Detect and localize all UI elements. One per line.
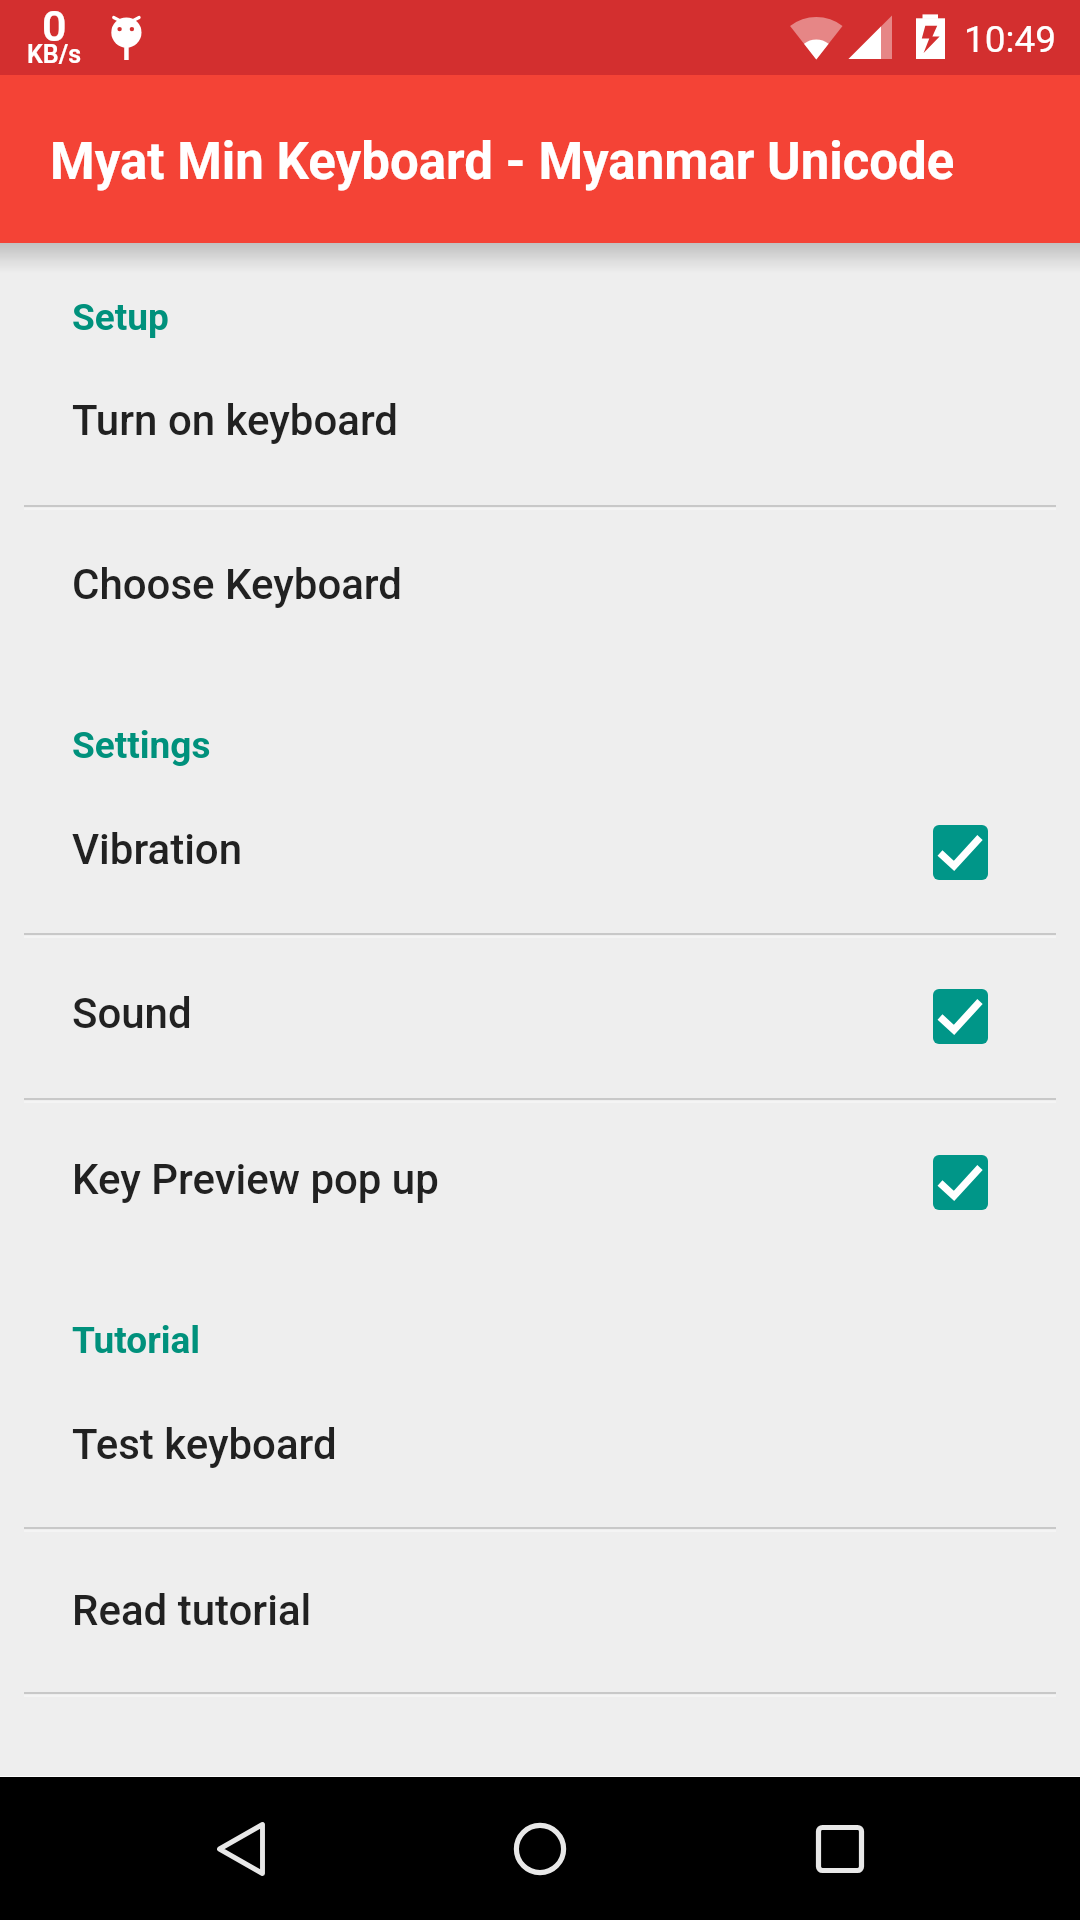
staticText: Sound [72,989,933,1038]
staticText: KB/s [27,40,82,69]
button[interactable]: Recent apps [750,1777,930,1920]
button[interactable]: Toggle Vibration [933,825,988,880]
staticText: Turn on keyboard [72,396,1080,445]
staticText: 0 [42,1,67,51]
staticText: Choose Keyboard [72,560,1080,609]
staticText: Test keyboard [72,1420,1080,1469]
button[interactable]: Toggle Sound [933,989,988,1044]
staticText: 10:49 [964,18,1057,61]
button[interactable]: Toggle Key Preview pop up [933,1155,988,1210]
staticText: Tutorial [72,1319,201,1362]
button[interactable]: Vibration [0,767,1080,931]
staticText: Key Preview pop up [72,1155,933,1204]
staticText: Settings [72,724,211,767]
staticText: Myat Min Keyboard - Myanmar Unicode [50,132,955,192]
button[interactable]: Back [150,1777,330,1920]
button[interactable]: Sound [0,931,1080,1095]
staticText: Setup [72,296,169,339]
button[interactable]: Home [450,1777,630,1920]
button[interactable]: Choose Keyboard [0,502,1080,666]
button[interactable]: Key Preview pop up [0,1097,1080,1261]
button[interactable]: Test keyboard [0,1362,1080,1526]
button[interactable]: Read tutorial [0,1528,1080,1692]
button[interactable]: Turn on keyboard [0,338,1080,502]
staticText: Read tutorial [72,1586,1080,1635]
staticText: Vibration [72,825,933,874]
